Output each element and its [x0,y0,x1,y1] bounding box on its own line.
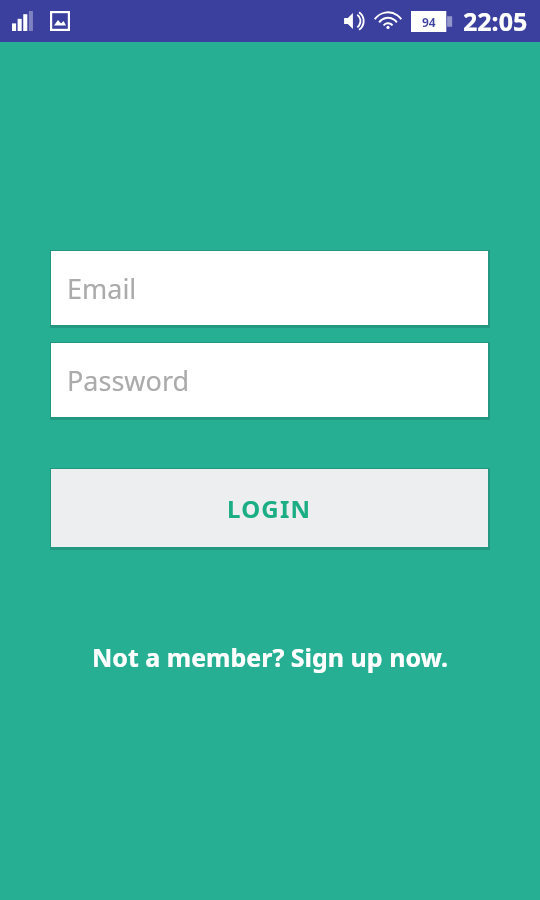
staticText: 94 [422,14,436,30]
staticText: Not a member? Sign up now. [92,640,448,674]
staticText: LOGIN [227,492,312,525]
staticText: Password [67,362,190,399]
button[interactable]: LOGIN [51,469,488,547]
staticText: 22:05 [463,4,528,38]
staticText: Email [67,270,137,307]
button[interactable]: Email [51,251,488,325]
button[interactable]: Not a member? Sign up now. [0,640,540,674]
button[interactable]: Password [51,343,488,417]
